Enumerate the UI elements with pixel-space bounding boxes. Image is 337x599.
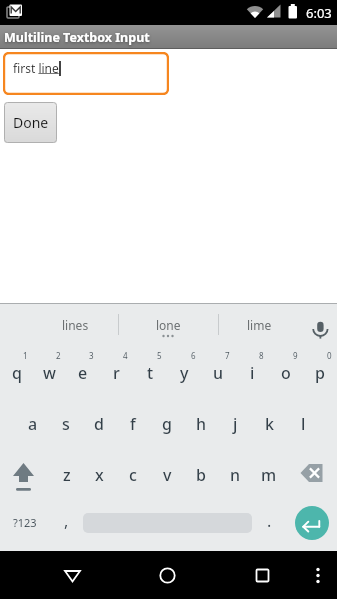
button[interactable]: [286, 449, 337, 500]
button[interactable]: c: [116, 449, 150, 500]
button[interactable]: x: [83, 449, 116, 500]
button[interactable]: g: [150, 398, 184, 449]
staticText: 5: [157, 350, 162, 361]
staticText: 4: [123, 350, 128, 361]
staticText: q: [12, 362, 22, 384]
button[interactable]: b: [184, 449, 218, 500]
button[interactable]: j: [218, 398, 252, 449]
staticText: v: [163, 464, 172, 486]
button[interactable]: [0, 449, 50, 500]
button[interactable]: lone: [128, 311, 208, 339]
staticText: p: [315, 362, 325, 384]
staticText: t: [147, 362, 154, 384]
staticText: a: [28, 413, 38, 435]
staticText: 6: [191, 350, 196, 361]
button[interactable]: n: [218, 449, 252, 500]
staticText: first line: [13, 60, 59, 76]
button[interactable]: f: [116, 398, 150, 449]
button[interactable]: s: [49, 398, 82, 449]
button[interactable]: .: [252, 500, 286, 551]
button[interactable]: [245, 558, 280, 593]
staticText: e: [78, 362, 88, 384]
button[interactable]: [55, 558, 90, 593]
staticText: c: [129, 464, 137, 486]
staticText: s: [62, 413, 70, 435]
staticText: n: [230, 464, 241, 486]
staticText: 7: [225, 350, 230, 361]
staticText: 2: [56, 350, 61, 361]
button[interactable]: 9: [269, 347, 303, 398]
staticText: 6:03: [306, 4, 332, 22]
staticText: 0: [327, 350, 332, 361]
staticText: ?123: [13, 515, 37, 530]
button[interactable]: first line: [3, 52, 169, 95]
staticText: h: [196, 413, 207, 435]
button[interactable]: h: [184, 398, 218, 449]
staticText: j: [233, 413, 238, 435]
staticText: lone: [156, 317, 181, 333]
button[interactable]: [306, 315, 334, 343]
button[interactable]: 2: [33, 347, 66, 398]
button[interactable]: l: [286, 398, 320, 449]
button[interactable]: [308, 558, 328, 593]
button[interactable]: k: [252, 398, 286, 449]
staticText: 1: [23, 350, 28, 361]
staticText: 8: [259, 350, 264, 361]
staticText: Multiline Textbox Input: [4, 29, 150, 46]
staticText: 9: [293, 350, 298, 361]
staticText: lines: [62, 317, 89, 333]
staticText: w: [43, 362, 56, 384]
button[interactable]: d: [82, 398, 116, 449]
staticText: .: [267, 510, 272, 532]
button[interactable]: m: [252, 449, 286, 500]
staticText: l: [301, 413, 306, 435]
staticText: b: [196, 464, 206, 486]
button[interactable]: 8: [235, 347, 269, 398]
staticText: x: [95, 464, 104, 486]
button[interactable]: 3: [66, 347, 99, 398]
button[interactable]: 1: [0, 347, 33, 398]
staticText: lime: [247, 317, 272, 333]
button[interactable]: 7: [201, 347, 235, 398]
staticText: m: [261, 464, 277, 486]
button[interactable]: ?123: [0, 500, 50, 551]
button[interactable]: Done: [4, 102, 57, 143]
button[interactable]: ,: [50, 500, 83, 551]
staticText: i: [250, 362, 255, 384]
staticText: k: [265, 413, 274, 435]
button[interactable]: lime: [228, 311, 290, 339]
button[interactable]: 0: [303, 347, 337, 398]
staticText: y: [180, 362, 189, 384]
staticText: u: [213, 362, 224, 384]
button[interactable]: lines: [36, 311, 114, 339]
staticText: g: [162, 413, 172, 435]
button[interactable]: [83, 500, 252, 551]
button[interactable]: 4: [99, 347, 133, 398]
staticText: 3: [89, 350, 94, 361]
button[interactable]: [286, 500, 337, 551]
staticText: z: [63, 464, 71, 486]
staticText: r: [113, 362, 120, 384]
button[interactable]: [150, 558, 185, 593]
staticText: f: [130, 413, 136, 435]
button[interactable]: 6: [167, 347, 201, 398]
button[interactable]: v: [150, 449, 184, 500]
button[interactable]: z: [50, 449, 83, 500]
staticText: Done: [13, 113, 49, 132]
staticText: ,: [64, 510, 69, 532]
button[interactable]: 5: [133, 347, 167, 398]
button[interactable]: a: [16, 398, 49, 449]
staticText: d: [94, 413, 104, 435]
staticText: o: [281, 362, 291, 384]
